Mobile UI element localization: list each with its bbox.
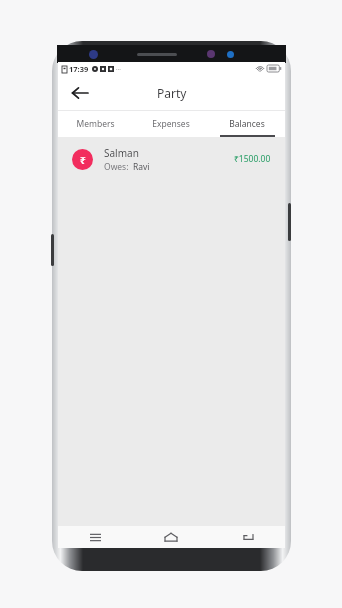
button[interactable]: Back [66, 80, 92, 106]
button[interactable]: ₹ [58, 137, 285, 181]
button[interactable]: Expenses [133, 111, 209, 137]
staticText: Party [157, 85, 187, 101]
button[interactable]: Back [209, 526, 285, 548]
button[interactable]: Recent apps [58, 526, 133, 548]
staticText: ₹1500.00 [234, 153, 271, 165]
staticText: Owes: [104, 161, 129, 173]
staticText: Salman [104, 146, 139, 160]
button[interactable]: Balances [209, 111, 285, 137]
button[interactable]: Members [58, 111, 133, 137]
staticText: 17:39 [69, 64, 89, 74]
staticText: Expenses [152, 118, 190, 130]
staticText: ··· [116, 65, 121, 73]
button[interactable]: Home [133, 526, 209, 548]
staticText: Balances [229, 118, 265, 130]
staticText: ₹ [80, 153, 86, 167]
staticText: Members [76, 118, 115, 130]
staticText: Ravi [133, 161, 150, 173]
